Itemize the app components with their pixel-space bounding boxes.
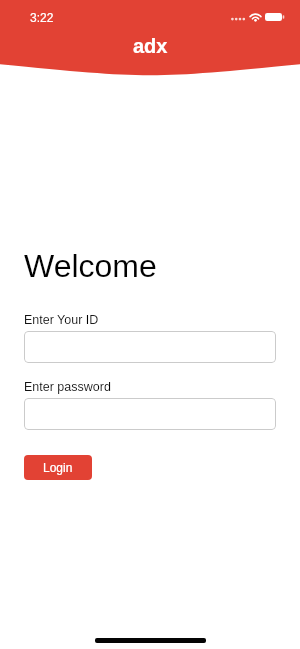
other: Home indicator (95, 638, 206, 643)
other: Battery (265, 13, 284, 21)
staticText: 3:22 (30, 11, 54, 24)
staticText: Enter password (24, 380, 111, 394)
button[interactable]: Login (24, 455, 92, 480)
button[interactable]: Enter Your ID field (24, 331, 276, 363)
other: Wi-Fi (249, 12, 262, 22)
button[interactable]: Enter password field (24, 398, 276, 430)
staticText: Welcome (24, 248, 157, 284)
staticText: Login (43, 461, 73, 474)
staticText: adx (133, 35, 168, 57)
other: Cellular signal (231, 16, 245, 23)
staticText: Enter Your ID (24, 313, 99, 327)
